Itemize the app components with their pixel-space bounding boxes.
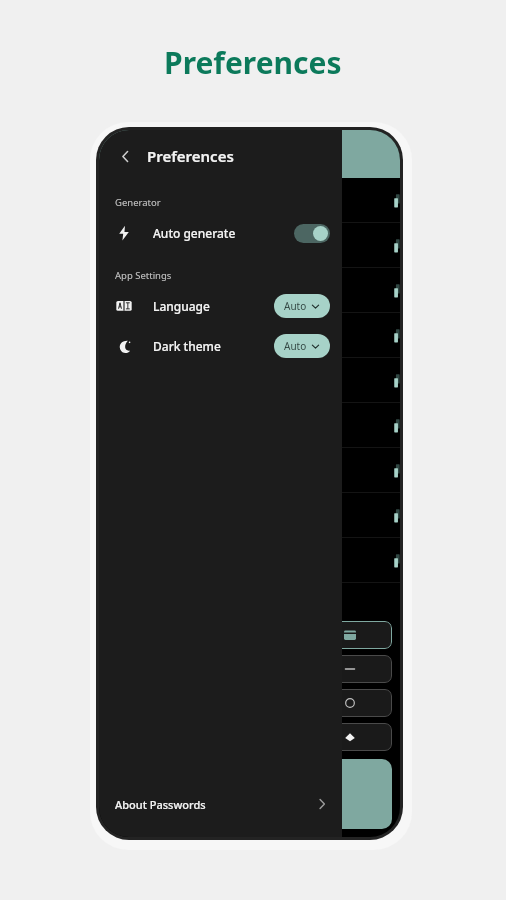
button[interactable]: About Passwords: [99, 781, 342, 827]
staticText: Preferences: [164, 42, 342, 83]
button[interactable]: Auto generate: [99, 213, 342, 253]
button[interactable]: Auto: [274, 294, 330, 318]
staticText: Auto: [284, 339, 307, 353]
button[interactable]: Language: [99, 286, 342, 326]
button[interactable]: AR: [107, 723, 392, 751]
staticText: Language: [153, 298, 210, 314]
button[interactable]: [99, 493, 400, 538]
button[interactable]: Option: [107, 621, 392, 649]
button[interactable]: [99, 538, 400, 583]
button[interactable]: Auto generate toggle: [294, 224, 330, 243]
staticText: Auto: [284, 299, 307, 313]
button[interactable]: Back: [111, 142, 139, 170]
button[interactable]: Dark theme: [99, 326, 342, 366]
button[interactable]: Generate: [107, 759, 392, 829]
button[interactable]: [99, 448, 400, 493]
staticText: App Settings: [115, 269, 172, 282]
button[interactable]: Option: [107, 655, 392, 683]
button[interactable]: [99, 223, 400, 268]
staticText: Dark theme: [153, 338, 221, 354]
button[interactable]: [99, 313, 400, 358]
staticText: Preferences: [147, 146, 234, 166]
button[interactable]: [99, 358, 400, 403]
button[interactable]: [99, 268, 400, 313]
button[interactable]: [99, 403, 400, 448]
button[interactable]: Option: [107, 689, 392, 717]
button[interactable]: [99, 178, 400, 223]
staticText: Generator: [115, 196, 161, 209]
staticText: Auto generate: [153, 225, 236, 241]
button[interactable]: Auto: [274, 334, 330, 358]
staticText: About Passwords: [115, 797, 206, 812]
